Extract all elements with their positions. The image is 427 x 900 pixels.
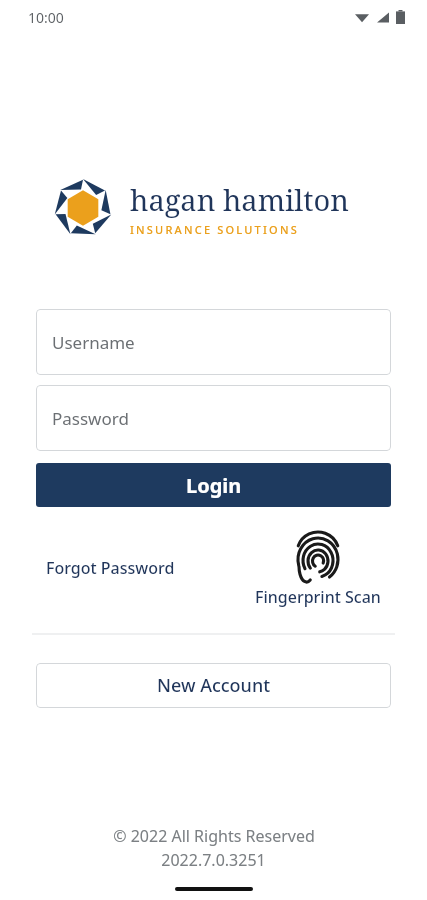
staticText: Forgot Password — [46, 557, 175, 579]
staticText: hagan hamilton — [130, 180, 349, 219]
staticText: Password — [52, 407, 129, 430]
button[interactable]: Username — [36, 309, 391, 375]
staticText: 2022.7.0.3251 — [161, 849, 266, 871]
staticText: INSURANCE SOLUTIONS — [130, 222, 299, 237]
button[interactable]: Login — [36, 463, 391, 507]
staticText: © 2022 All Rights Reserved — [113, 825, 315, 847]
staticText: Fingerprint Scan — [255, 586, 381, 608]
button[interactable]: Fingerprint Scan — [251, 531, 385, 608]
button[interactable]: Forgot Password — [40, 553, 181, 583]
staticText: 10:00 — [28, 8, 64, 27]
button[interactable]: New Account — [36, 663, 391, 708]
staticText: Username — [52, 331, 135, 354]
staticText: Login — [186, 472, 242, 499]
staticText: New Account — [157, 673, 271, 698]
button[interactable]: Password — [36, 385, 391, 451]
